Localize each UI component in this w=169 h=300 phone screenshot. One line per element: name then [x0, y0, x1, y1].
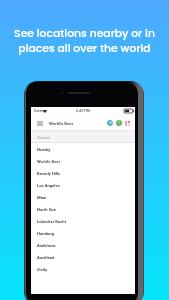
button[interactable]: Sicily — [31, 263, 135, 275]
button[interactable]: Beverly Hills — [31, 167, 135, 179]
button[interactable]: Collections — [125, 121, 130, 126]
button[interactable]: World — [116, 120, 122, 126]
staticText: Maui — [37, 195, 47, 200]
button[interactable]: North Sea — [31, 203, 135, 215]
staticText: Hamburg — [37, 231, 55, 236]
button[interactable]: Nearby — [107, 120, 113, 126]
staticText: North Sea — [37, 207, 56, 212]
staticText: Auckland — [37, 255, 55, 260]
staticText: World's Best — [49, 121, 74, 126]
button[interactable]: Andalucia — [31, 239, 135, 251]
button[interactable]: Search — [31, 131, 135, 143]
button[interactable]: Nearby — [31, 143, 135, 155]
button[interactable]: World's Best — [31, 155, 135, 167]
staticText: Sicily — [37, 267, 48, 272]
button[interactable]: Hamburg — [31, 227, 135, 239]
staticText: 2:45 PM — [76, 109, 90, 113]
button[interactable]: Los Angeles — [31, 179, 135, 191]
staticText: Search — [37, 135, 50, 140]
staticText: Nearby — [37, 147, 51, 152]
button[interactable]: Lübecker Bucht — [31, 215, 135, 227]
button[interactable]: Maui — [31, 191, 135, 203]
staticText: Beverly Hills — [37, 171, 61, 176]
staticText: Lübecker Bucht — [37, 219, 67, 224]
staticText: See locations nearby or in places all ov… — [0, 26, 169, 56]
button[interactable]: Auckland — [31, 251, 135, 263]
staticText: Carrier — [34, 109, 46, 113]
staticText: World's Best — [37, 159, 60, 164]
staticText: Los Angeles — [37, 183, 60, 188]
staticText: Andalucia — [37, 243, 56, 248]
